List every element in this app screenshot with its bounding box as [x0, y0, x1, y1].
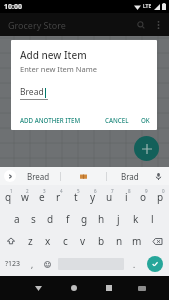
button[interactable]: Back — [21, 276, 56, 300]
staticText: b — [98, 234, 105, 248]
staticText: . — [133, 259, 136, 270]
button[interactable]: 1 — [0, 185, 16, 208]
button[interactable]: Shift — [0, 230, 22, 252]
staticText: Enter new Item Name — [20, 64, 97, 74]
staticText: p — [157, 190, 164, 204]
staticText: o — [140, 190, 147, 204]
staticText: q — [5, 190, 12, 204]
button[interactable]: b — [92, 230, 110, 252]
button[interactable]: 7 — [101, 185, 118, 208]
staticText: Bread — [20, 86, 44, 98]
button[interactable]: h — [93, 208, 110, 230]
button[interactable]: Recent apps — [91, 276, 126, 300]
staticText: 7 — [111, 188, 114, 194]
button[interactable]: Emoji suggestion — [61, 167, 106, 185]
button[interactable]: s — [25, 208, 42, 230]
staticText: k — [133, 212, 139, 226]
staticText: x — [45, 234, 51, 248]
button[interactable]: 3 — [33, 185, 50, 208]
button[interactable]: 9 — [135, 185, 152, 208]
button[interactable]: Switch keyboard — [126, 276, 158, 300]
staticText: 4 — [60, 188, 63, 194]
staticText: m — [132, 234, 142, 248]
staticText: d — [47, 212, 54, 226]
button[interactable]: g — [76, 208, 93, 230]
button[interactable]: Home — [56, 276, 91, 300]
button[interactable]: ?123 — [0, 252, 25, 276]
staticText: 10:00 — [4, 2, 22, 12]
button[interactable]: ADD ANOTHER ITEM — [17, 113, 84, 127]
button[interactable]: c — [56, 230, 74, 252]
staticText: w — [21, 190, 29, 204]
button[interactable]: a — [8, 208, 25, 230]
staticText: j — [117, 212, 120, 226]
button[interactable]: v — [74, 230, 92, 252]
staticText: 9 — [145, 188, 148, 194]
staticText: 8 — [128, 188, 131, 194]
staticText: h — [98, 212, 105, 226]
button[interactable]: 8 — [118, 185, 135, 208]
button[interactable]: More options — [150, 17, 166, 33]
button[interactable]: Voice input — [152, 170, 164, 182]
staticText: s — [31, 212, 36, 226]
button[interactable]: , — [25, 252, 39, 276]
button[interactable]: Backspace — [146, 230, 169, 252]
button[interactable]: Emoji — [39, 252, 55, 276]
staticText: 2 — [26, 188, 29, 194]
button[interactable]: CANCEL — [101, 113, 133, 127]
button[interactable]: . — [127, 252, 141, 276]
button[interactable]: l — [144, 208, 161, 230]
staticText: i — [125, 190, 128, 204]
staticText: LTE — [143, 3, 152, 10]
staticText: l — [151, 212, 154, 226]
button[interactable]: j — [110, 208, 127, 230]
button[interactable]: k — [127, 208, 144, 230]
button[interactable]: n — [110, 230, 128, 252]
staticText: Add new Item — [20, 48, 87, 62]
staticText: a — [14, 212, 20, 226]
button[interactable]: z — [22, 230, 39, 252]
staticText: CANCEL — [105, 116, 129, 124]
button[interactable]: Add item — [134, 136, 159, 161]
staticText: Brad — [121, 171, 139, 182]
button[interactable]: 5 — [67, 185, 84, 208]
button[interactable]: m — [128, 230, 146, 252]
button[interactable]: f — [59, 208, 76, 230]
button[interactable]: Bread — [16, 167, 60, 185]
staticText: Grocery Store — [8, 19, 66, 31]
staticText: 3 — [43, 188, 46, 194]
button[interactable]: 0 — [152, 185, 169, 208]
staticText: u — [106, 190, 113, 204]
staticText: e — [39, 190, 45, 204]
staticText: , — [31, 259, 34, 270]
staticText: t — [74, 190, 78, 204]
button[interactable]: Expand suggestions — [4, 170, 16, 182]
staticText: c — [63, 234, 68, 248]
staticText: z — [28, 234, 33, 248]
staticText: v — [80, 234, 86, 248]
staticText: 6 — [94, 188, 97, 194]
staticText: 5 — [77, 188, 80, 194]
button[interactable]: 4 — [50, 185, 67, 208]
button[interactable]: Search — [132, 16, 150, 34]
button[interactable]: d — [42, 208, 59, 230]
button[interactable]: x — [39, 230, 56, 252]
staticText: 1 — [10, 188, 13, 194]
button[interactable]: 6 — [84, 185, 101, 208]
staticText: f — [66, 212, 70, 226]
button[interactable]: Done — [147, 256, 163, 272]
staticText: n — [116, 234, 123, 248]
staticText: g — [81, 212, 88, 226]
staticText: r — [56, 190, 61, 204]
staticText: OK — [141, 116, 150, 124]
button[interactable]: Brad — [107, 167, 152, 185]
staticText: 0 — [162, 188, 165, 194]
staticText: y — [90, 190, 96, 204]
button[interactable]: OK — [137, 113, 154, 127]
staticText: Bread — [27, 171, 50, 182]
button[interactable]: 2 — [16, 185, 33, 208]
staticText: ?123 — [5, 259, 21, 269]
staticText: ADD ANOTHER ITEM — [20, 116, 81, 124]
